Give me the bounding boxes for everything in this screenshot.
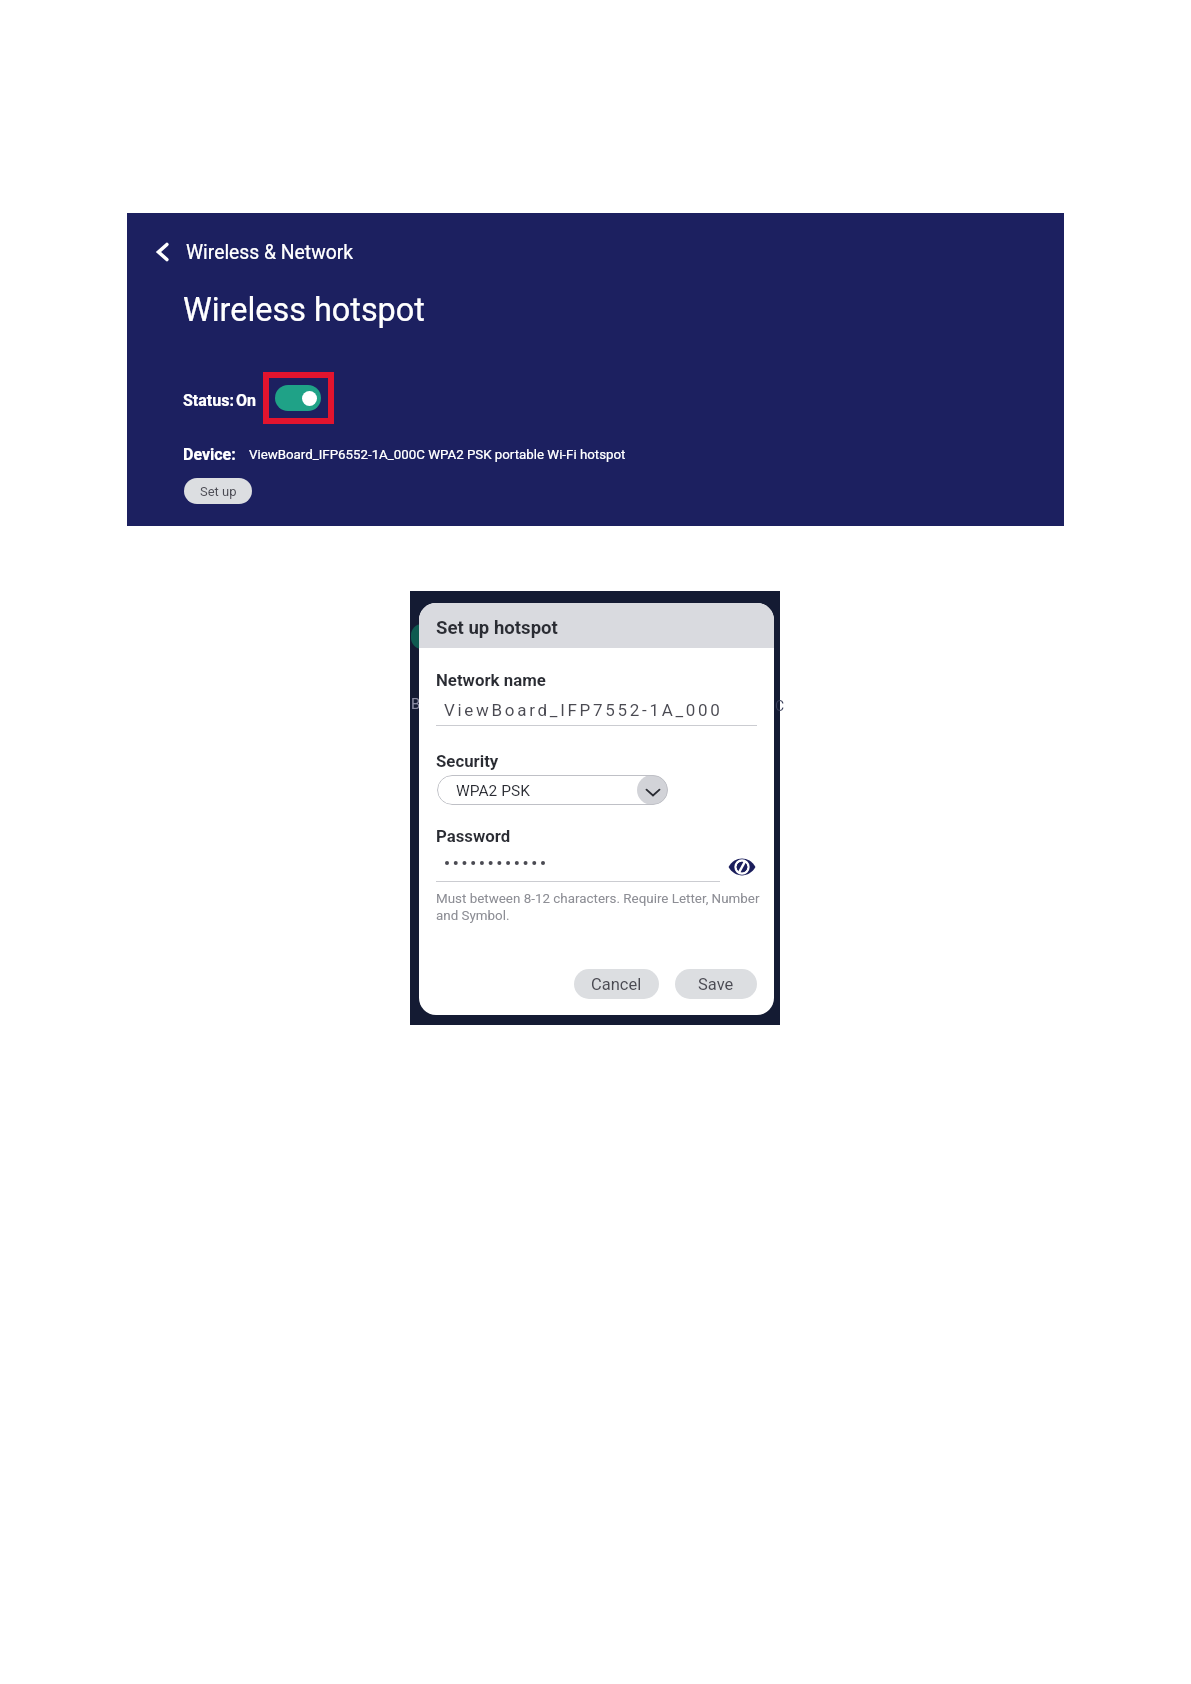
- staticText: Save: [698, 975, 734, 994]
- staticText: WPA2 PSK: [456, 782, 530, 800]
- button[interactable]: Hotspot toggle: [275, 385, 321, 411]
- staticText: ViewBoard_IFP7552-1A_000: [444, 700, 723, 720]
- staticText: Must between 8-12 characters. Require Le…: [436, 890, 760, 924]
- staticText: B: [411, 695, 421, 713]
- staticText: Wireless hotspot: [183, 291, 425, 329]
- button[interactable]: Back: [148, 237, 353, 267]
- staticText: Cancel: [591, 975, 642, 994]
- button[interactable]: Show password: [727, 852, 757, 882]
- other: Back: [148, 237, 178, 267]
- staticText: On: [236, 391, 256, 410]
- button[interactable]: Set up: [184, 478, 252, 504]
- staticText: Status:: [183, 391, 234, 410]
- staticText: ViewBoard_IFP6552-1A_000C WPA2 PSK porta…: [249, 447, 626, 463]
- button[interactable]: Save: [675, 969, 757, 999]
- staticText: Set up hotspot: [436, 617, 558, 639]
- button[interactable]: Cancel: [574, 969, 659, 999]
- staticText: Wireless & Network: [186, 241, 353, 264]
- staticText: Security: [436, 751, 499, 771]
- staticText: Password: [436, 826, 511, 846]
- staticText: Device:: [183, 445, 236, 464]
- staticText: Network name: [436, 670, 546, 690]
- staticText: C: [775, 698, 785, 714]
- button[interactable]: WPA2 PSK: [437, 775, 668, 805]
- staticText: Set up: [200, 484, 237, 499]
